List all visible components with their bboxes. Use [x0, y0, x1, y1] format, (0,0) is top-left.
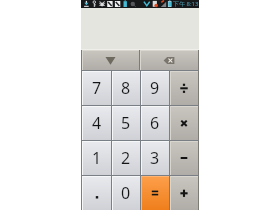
staticText: 0 [121, 182, 131, 204]
staticText: 2 [121, 147, 131, 169]
staticText: 7 [92, 77, 102, 99]
staticText: 6 [150, 112, 160, 134]
button[interactable]: Minus [170, 141, 198, 175]
button[interactable]: Multiply [170, 106, 198, 140]
staticText: 9 [150, 77, 160, 99]
button[interactable]: 0 [112, 176, 140, 210]
button[interactable]: 3 [141, 141, 169, 175]
button[interactable]: 8 [112, 71, 140, 105]
button[interactable]: Decimal point [82, 176, 111, 210]
button[interactable]: Plus [170, 176, 198, 210]
button[interactable]: Hide keypad [82, 50, 139, 70]
button[interactable]: Divide [170, 71, 198, 105]
button[interactable]: 4 [82, 106, 111, 140]
button[interactable]: 2 [112, 141, 140, 175]
staticText: 8 [121, 77, 131, 99]
staticText: 3 [150, 147, 160, 169]
button[interactable]: 7 [82, 71, 111, 105]
staticText: 5 [121, 112, 131, 134]
button[interactable]: Delete [140, 50, 198, 70]
staticText: 4 [92, 112, 102, 134]
button[interactable]: Equals [141, 176, 169, 210]
button[interactable]: 1 [82, 141, 111, 175]
button[interactable]: 6 [141, 106, 169, 140]
staticText: 1 [92, 147, 102, 169]
button[interactable]: 9 [141, 71, 169, 105]
button[interactable]: 5 [112, 106, 140, 140]
staticText: 下午 8:13 [173, 0, 199, 8]
